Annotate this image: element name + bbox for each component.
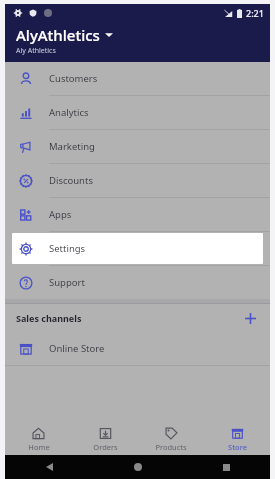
staticText: Apps [49,208,72,221]
staticText: Products [155,442,187,452]
staticText: Support [49,276,85,289]
staticText: Sales channels [16,312,82,324]
button[interactable]: Home [94,455,182,479]
button[interactable]: Analytics [5,96,270,129]
button[interactable]: Customers [5,62,270,95]
button[interactable]: Marketing [5,130,270,163]
button[interactable]: Back [5,455,94,479]
button[interactable]: Online Store [5,332,270,365]
staticText: Store [228,442,247,452]
staticText: Marketing [49,140,95,153]
button[interactable]: Apps [5,198,270,231]
staticText: 2:21 [246,7,264,19]
button[interactable]: Sales channels [5,304,270,332]
button[interactable]: Home [5,423,72,455]
staticText: Analytics [49,106,89,119]
staticText: Online Store [49,342,105,355]
button[interactable]: Discounts [5,164,270,197]
button[interactable]: Store [204,423,270,455]
button[interactable]: Support [5,266,270,299]
staticText: Settings [49,242,86,255]
button[interactable]: Add sales channel [241,309,259,327]
staticText: Orders [93,442,118,452]
button[interactable]: Recent apps [182,455,270,479]
staticText: Aly Athletics [16,46,56,56]
button[interactable]: AlyAthletics [5,22,270,62]
staticText: AlyAthletics [16,25,100,45]
button[interactable]: Products [138,423,204,455]
staticText: Customers [49,72,98,85]
button[interactable]: Settings [12,233,263,264]
staticText: Home [28,442,50,452]
button[interactable]: Orders [72,423,138,455]
staticText: Discounts [49,174,93,187]
